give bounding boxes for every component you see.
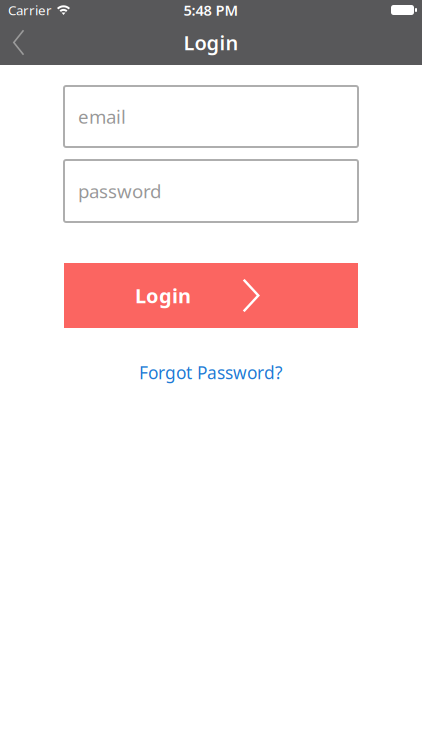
staticText: Forgot Password? [139,361,283,384]
staticText: Login [183,29,238,56]
button[interactable]: email [64,86,358,147]
staticText: Login [135,282,191,309]
staticText: email [78,104,126,129]
button[interactable]: Login [64,263,358,328]
staticText: 5:48 PM [183,0,238,20]
button[interactable]: Forgot Password? [139,361,283,384]
staticText: Carrier [8,1,52,19]
button[interactable]: password [64,160,358,222]
button[interactable] [0,20,24,64]
staticText: password [78,179,161,203]
